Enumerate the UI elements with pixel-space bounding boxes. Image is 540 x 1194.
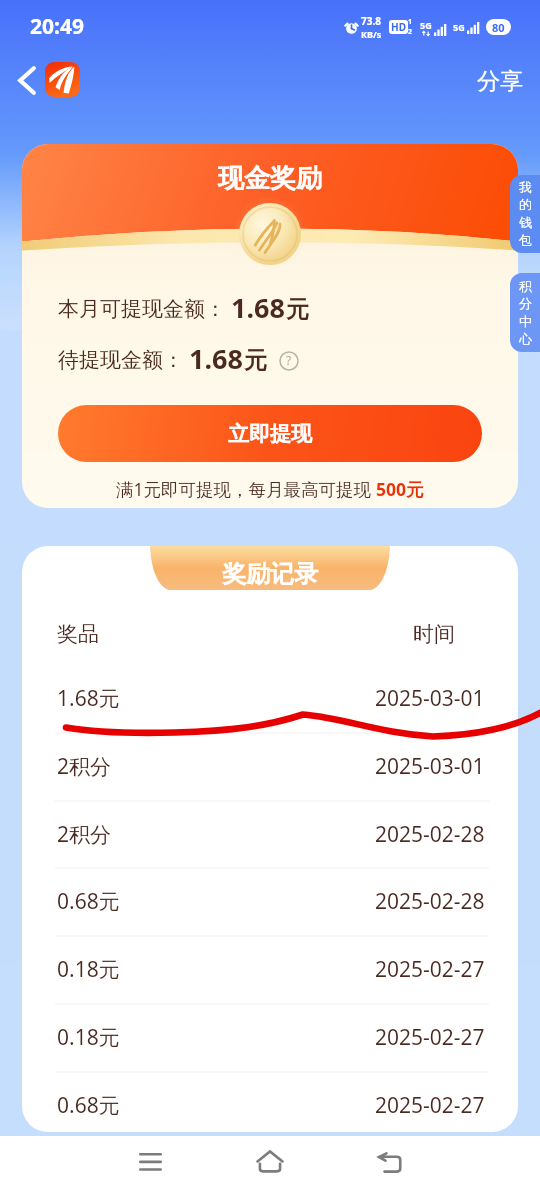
staticText: 2025-02-27 (375, 1091, 485, 1120)
staticText: 2 (408, 27, 413, 37)
button[interactable]: 立即提现 (58, 405, 482, 462)
button[interactable]: 2积分 (22, 733, 518, 800)
staticText: 5G (453, 21, 465, 33)
button[interactable]: Help (278, 350, 300, 372)
button[interactable]: Back (361, 1134, 417, 1190)
button[interactable]: 积 分 中 心 (510, 273, 540, 352)
staticText: 80 (492, 20, 505, 35)
staticText: 满1元即可提现，每月最高可提现 (116, 477, 376, 501)
staticText: 本月可提现金额： (58, 296, 226, 322)
staticText: 现金奖励 (218, 162, 322, 195)
staticText: 20:49 (30, 12, 84, 41)
staticText: 500元 (376, 477, 424, 501)
button[interactable]: 分享 (465, 58, 535, 105)
staticText: 1.68 (231, 289, 285, 326)
staticText: 元 (244, 346, 267, 375)
staticText: 5G (420, 19, 432, 31)
staticText: 2025-02-28 (375, 887, 485, 916)
staticText: 积 分 中 心 (519, 278, 532, 348)
staticText: 2025-03-01 (375, 684, 485, 713)
staticText: KB/s (361, 28, 382, 40)
staticText: 0.68元 (57, 887, 120, 916)
staticText: 2025-02-28 (375, 820, 485, 849)
button[interactable]: Toutiao home (40, 57, 85, 102)
staticText: 0.18元 (57, 1023, 120, 1052)
staticText: 我 的 钱 包 (519, 179, 532, 249)
staticText: HD (391, 20, 406, 34)
button[interactable]: 2积分 (22, 801, 518, 868)
staticText: 元 (286, 295, 309, 324)
staticText: 2积分 (57, 820, 112, 849)
button[interactable]: Back (5, 58, 49, 102)
staticText: 待提现金额： (58, 347, 184, 373)
staticText: 0.18元 (57, 955, 120, 984)
staticText: 1 (408, 17, 413, 27)
button[interactable]: 0.18元 (22, 936, 518, 1003)
button[interactable]: 0.18元 (22, 1004, 518, 1071)
staticText: 1.68元 (57, 684, 120, 713)
staticText: 时间 (413, 621, 455, 647)
staticText: 2025-02-27 (375, 955, 485, 984)
staticText: 2积分 (57, 752, 112, 781)
staticText: 分享 (477, 67, 523, 96)
staticText: 奖励记录 (222, 559, 318, 589)
staticText: 73.8 (361, 14, 381, 28)
staticText: 2025-03-01 (375, 752, 485, 781)
button[interactable]: 1.68元 (22, 665, 518, 732)
staticText: ? (286, 352, 292, 368)
staticText: 2025-02-27 (375, 1023, 485, 1052)
staticText: 0.68元 (57, 1091, 120, 1120)
button[interactable]: 0.68元 (22, 868, 518, 935)
staticText: 奖品 (57, 621, 99, 647)
button[interactable]: 0.68元 (22, 1072, 518, 1132)
staticText: 1.68 (189, 340, 243, 377)
button[interactable]: Recent apps (122, 1134, 178, 1190)
button[interactable]: 我 的 钱 包 (510, 175, 540, 253)
staticText: 立即提现 (228, 421, 312, 447)
button[interactable]: Home (242, 1133, 298, 1189)
